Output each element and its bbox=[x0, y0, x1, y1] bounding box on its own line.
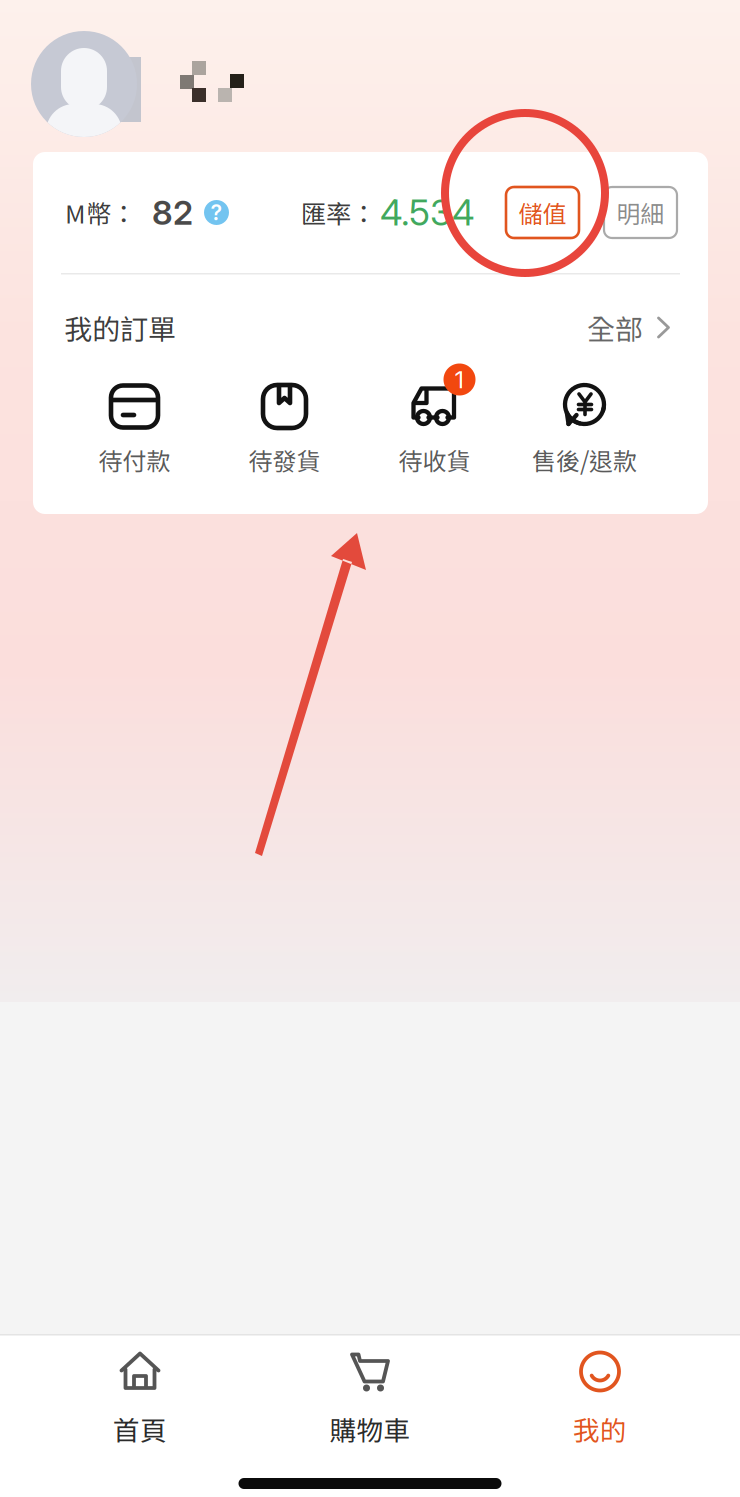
staticText: 1 bbox=[454, 365, 464, 394]
button[interactable]: 儲值 bbox=[506, 187, 579, 238]
staticText: 購物車 bbox=[329, 1409, 410, 1448]
button[interactable]: 明細 bbox=[604, 187, 677, 238]
button[interactable]: 首頁 bbox=[25, 1351, 255, 1448]
staticText: 明細 bbox=[616, 195, 664, 230]
staticText: 我的訂單 bbox=[64, 307, 176, 348]
button[interactable]: 購物車 bbox=[255, 1351, 485, 1448]
staticText: 儲值 bbox=[518, 195, 566, 230]
button[interactable]: 待收貨 bbox=[359, 380, 509, 477]
staticText: 首頁 bbox=[113, 1409, 167, 1448]
staticText: M幣： bbox=[65, 194, 136, 231]
staticText: 全部 bbox=[587, 307, 643, 348]
staticText: 匯率： bbox=[301, 194, 376, 231]
staticText: 待發貨 bbox=[248, 442, 320, 477]
staticText: 4.534 bbox=[380, 191, 475, 234]
staticText: 我的 bbox=[573, 1409, 627, 1448]
button[interactable]: 我的 bbox=[485, 1351, 715, 1448]
staticText: 售後/退款 bbox=[532, 442, 637, 477]
staticText: 待收貨 bbox=[398, 442, 470, 477]
button[interactable]: 待發貨 bbox=[209, 380, 359, 477]
button[interactable]: 全部 bbox=[587, 307, 671, 348]
staticText: 82 bbox=[152, 192, 193, 233]
button[interactable]: 售後/退款 bbox=[509, 380, 659, 477]
staticText: 待付款 bbox=[98, 442, 170, 477]
button[interactable]: 待付款 bbox=[59, 380, 209, 477]
staticText: ? bbox=[210, 200, 222, 225]
